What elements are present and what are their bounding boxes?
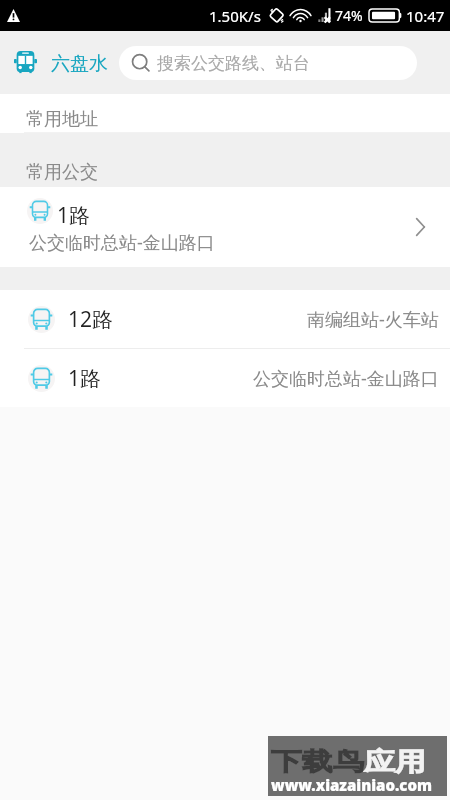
button[interactable]: 12路 [0, 290, 450, 348]
staticText: 1.50K/s [209, 6, 261, 26]
button[interactable]: 常用地址 [0, 94, 450, 133]
staticText: 常用公交 [26, 161, 98, 184]
staticText: 搜索公交路线、站台 [157, 53, 310, 74]
staticText: 74% [335, 6, 363, 25]
button[interactable]: 搜索公交路线、站台 [119, 46, 417, 80]
staticText: 1路 [68, 364, 102, 393]
staticText: www.xiazainiao.com [271, 775, 432, 795]
button[interactable]: 选择城市 六盘水 [11, 48, 40, 77]
staticText: 南编组站-火车站 [307, 307, 439, 332]
staticText: 12路 [68, 305, 114, 334]
staticText: 常用地址 [26, 108, 98, 131]
button[interactable]: 1路 [0, 187, 450, 267]
staticText: 应用 [364, 746, 426, 777]
staticText: 下载鸟 [271, 746, 364, 777]
staticText: 10:47 [406, 6, 445, 26]
staticText: 1路 [57, 201, 91, 230]
staticText: 六盘水 [51, 52, 108, 76]
button[interactable]: 1路 [0, 349, 450, 407]
staticText: 公交临时总站-金山路口 [29, 230, 215, 255]
staticText: 公交临时总站-金山路口 [253, 366, 439, 391]
